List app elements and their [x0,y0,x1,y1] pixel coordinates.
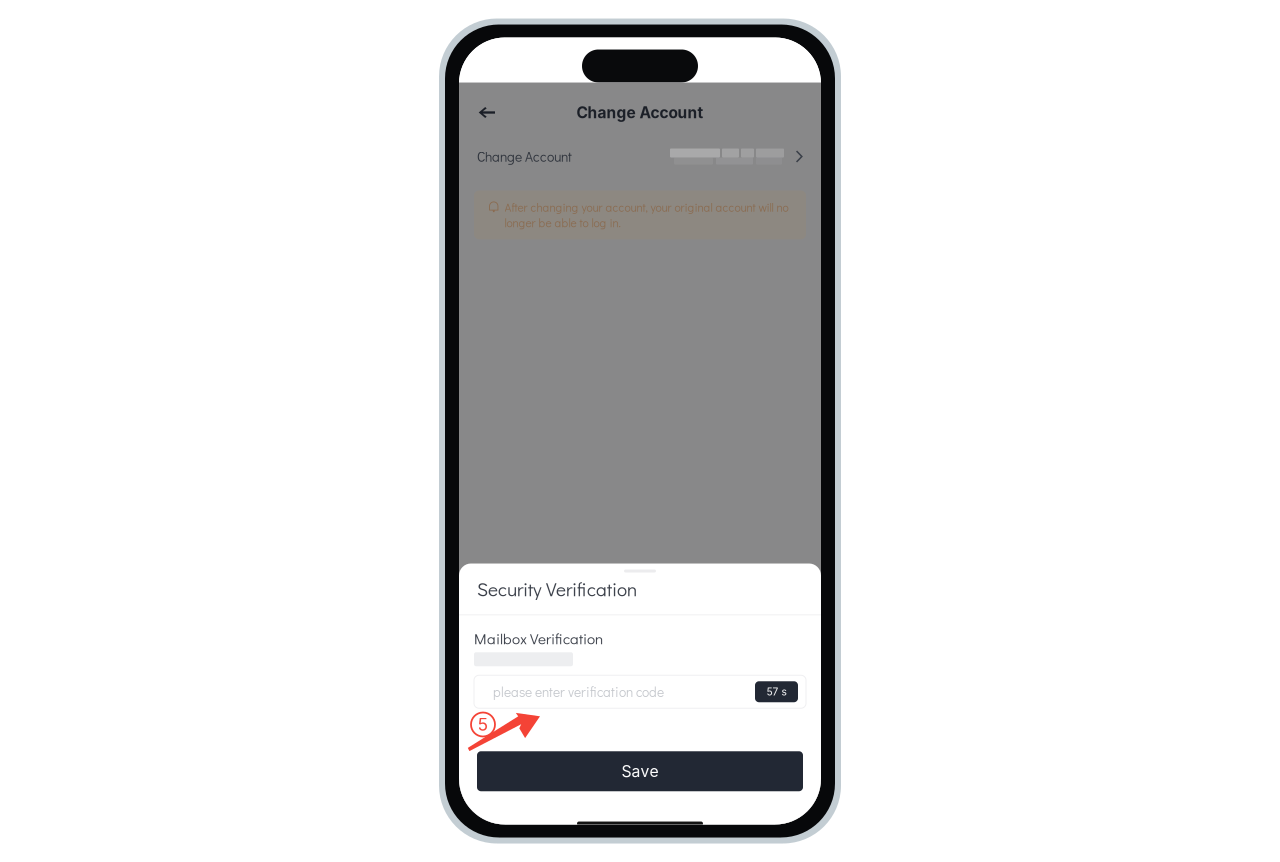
button[interactable]: Back [469,94,505,130]
staticText: Mailbox Verification [474,628,603,648]
button[interactable]: Change Account [459,142,821,170]
staticText: Change Account [477,147,572,165]
staticText: Save [621,762,658,781]
button[interactable]: Save [477,751,803,791]
staticText: 57 s [766,686,786,698]
staticText: please enter verification code [493,683,664,701]
staticText: Change Account [576,103,703,122]
staticText: 5 [477,714,488,735]
staticText: After changing your account, your origin… [504,199,788,230]
staticText: Security Verification [477,576,637,601]
button[interactable]: 57 s [755,681,798,702]
